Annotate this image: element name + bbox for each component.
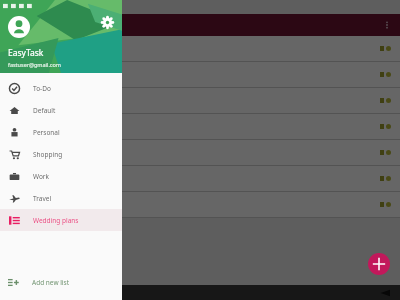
button[interactable] [0, 140, 400, 165]
staticText: Shopping [33, 150, 63, 159]
staticText: To-Do [33, 84, 51, 93]
button[interactable]: More options [379, 17, 395, 33]
button[interactable] [0, 166, 400, 191]
staticText: Add new list [32, 278, 70, 287]
button[interactable] [0, 62, 400, 87]
button[interactable]: Wedding plans [0, 209, 122, 231]
staticText: fastuser@gmail.com [8, 61, 61, 68]
button[interactable] [0, 88, 400, 113]
button[interactable]: Travel [0, 187, 122, 209]
button[interactable] [0, 36, 400, 61]
button[interactable]: Personal [0, 121, 122, 143]
button[interactable] [0, 192, 400, 217]
button[interactable]: Settings [101, 16, 114, 29]
staticText: Wedding plans [33, 216, 79, 225]
button[interactable]: Back [380, 288, 390, 298]
button[interactable]: Work [0, 165, 122, 187]
button[interactable]: Default [0, 99, 122, 121]
button[interactable]: Add task [368, 253, 390, 275]
staticText: Personal [33, 128, 60, 137]
staticText: Default [33, 106, 56, 115]
button[interactable] [0, 114, 400, 139]
button[interactable]: Add new list [0, 270, 122, 294]
button[interactable]: To-Do [0, 77, 122, 99]
staticText: Travel [33, 194, 52, 203]
button[interactable]: Shopping [0, 143, 122, 165]
staticText: Work [33, 172, 50, 181]
staticText: EasyTask [8, 47, 44, 59]
